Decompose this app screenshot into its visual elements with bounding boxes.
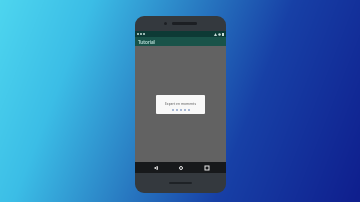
button[interactable]: Expert en moments: [156, 95, 205, 114]
button[interactable]: Tutorial: [135, 37, 226, 46]
button[interactable]: Back: [150, 162, 161, 173]
button[interactable]: Home: [175, 162, 186, 173]
button[interactable]: Recents: [201, 162, 212, 173]
staticText: Expert en moments: [165, 101, 196, 105]
staticText: Tutorial: [138, 39, 155, 45]
